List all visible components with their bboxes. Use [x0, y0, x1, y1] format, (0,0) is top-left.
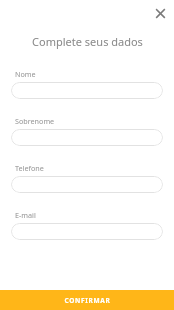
button[interactable] — [11, 82, 163, 99]
staticText: Sobrenome — [15, 116, 55, 126]
staticText: Nome — [15, 69, 36, 79]
button[interactable]: Fechar — [147, 0, 173, 26]
button[interactable] — [11, 129, 163, 146]
button[interactable] — [11, 223, 163, 240]
staticText: Telefone — [15, 163, 44, 173]
staticText: CONFIRMAR — [64, 296, 111, 305]
button[interactable]: CONFIRMAR — [0, 290, 174, 310]
staticText: E-mail — [15, 210, 36, 220]
staticText: Complete seus dados — [32, 34, 143, 49]
button[interactable] — [11, 176, 163, 193]
